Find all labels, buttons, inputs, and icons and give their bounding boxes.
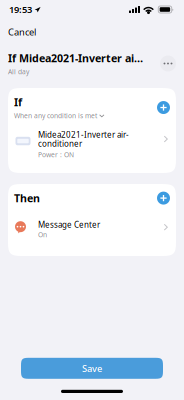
staticText: If bbox=[14, 95, 22, 109]
staticText: Power : ON bbox=[38, 150, 74, 159]
button[interactable]: Add bbox=[157, 101, 170, 114]
staticText: When any condition is met bbox=[14, 111, 97, 120]
button[interactable]: Cancel bbox=[0, 25, 44, 39]
button[interactable]: Midea2021-Inverter air- bbox=[8, 130, 176, 158]
button[interactable]: Add bbox=[157, 192, 170, 205]
staticText: If Midea2021-Inverter ai… bbox=[8, 51, 143, 65]
staticText: conditioner bbox=[38, 138, 82, 149]
button[interactable]: Save bbox=[21, 358, 163, 379]
staticText: On bbox=[38, 230, 47, 239]
staticText: Then bbox=[14, 191, 40, 205]
staticText: 19:53 bbox=[9, 3, 32, 16]
button[interactable]: More options bbox=[160, 55, 176, 71]
staticText: Cancel bbox=[8, 26, 36, 38]
staticText: All day bbox=[8, 67, 29, 76]
staticText: Midea2021-Inverter air- bbox=[38, 129, 129, 140]
staticText: Save bbox=[82, 362, 102, 374]
button[interactable]: Message Center bbox=[8, 220, 176, 238]
staticText: Message Center bbox=[38, 219, 100, 230]
